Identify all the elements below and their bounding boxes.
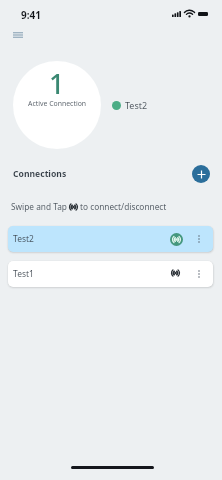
staticText: 9:41 (21, 8, 41, 22)
button[interactable]: More options (197, 233, 201, 245)
staticText: Active Connection (28, 99, 87, 108)
button[interactable]: More options (197, 268, 201, 280)
staticText: Test2 (13, 233, 34, 245)
staticText: Test2 (125, 99, 148, 111)
staticText: 1 (49, 65, 65, 102)
button[interactable]: Test2 (8, 226, 213, 252)
staticText: to connect/disconnect (80, 201, 167, 212)
staticText: Swipe and Tap (11, 201, 67, 212)
button[interactable]: Menu (8, 25, 27, 44)
button[interactable]: Test1 (8, 261, 213, 287)
button[interactable]: Disconnect (170, 233, 183, 246)
staticText: Connections (13, 168, 67, 180)
button[interactable]: Add connection (192, 165, 210, 183)
staticText: Test1 (13, 268, 34, 280)
button[interactable]: Connect (171, 270, 180, 276)
